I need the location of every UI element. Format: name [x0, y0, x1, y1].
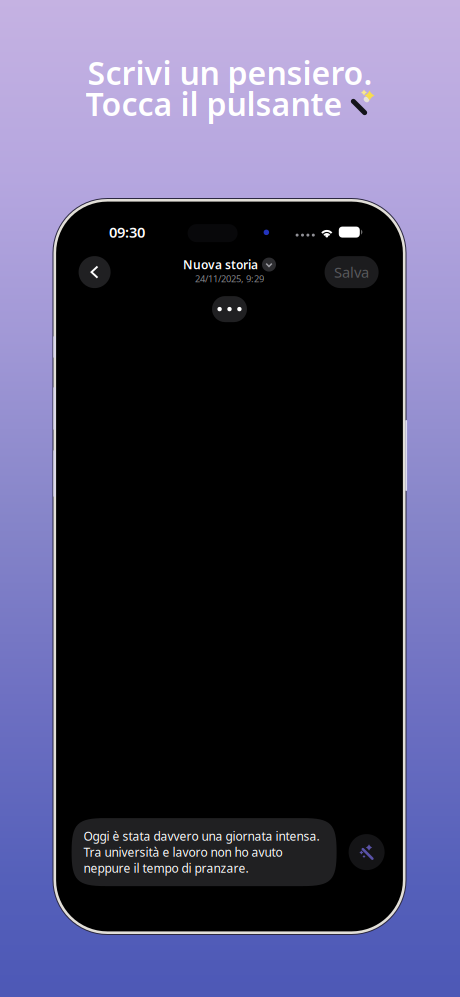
button[interactable]: Salva	[325, 256, 379, 288]
button[interactable]: Altre opzioni	[212, 296, 247, 322]
staticText: Nuova storia	[183, 257, 258, 272]
staticText: Oggi è stata davvero una giornata intens…	[84, 828, 320, 876]
button[interactable]: Indietro	[79, 256, 111, 288]
staticText: 09:30	[109, 222, 145, 242]
staticText: Scrivi un pensiero.	[87, 51, 372, 94]
button[interactable]: Migliora con AI	[349, 834, 385, 870]
staticText: Salva	[334, 262, 369, 282]
staticText: Tocca il pulsante	[85, 82, 342, 125]
staticText: 24/11/2025, 9:29	[195, 272, 264, 285]
button[interactable]: Nuova storia	[183, 257, 276, 272]
